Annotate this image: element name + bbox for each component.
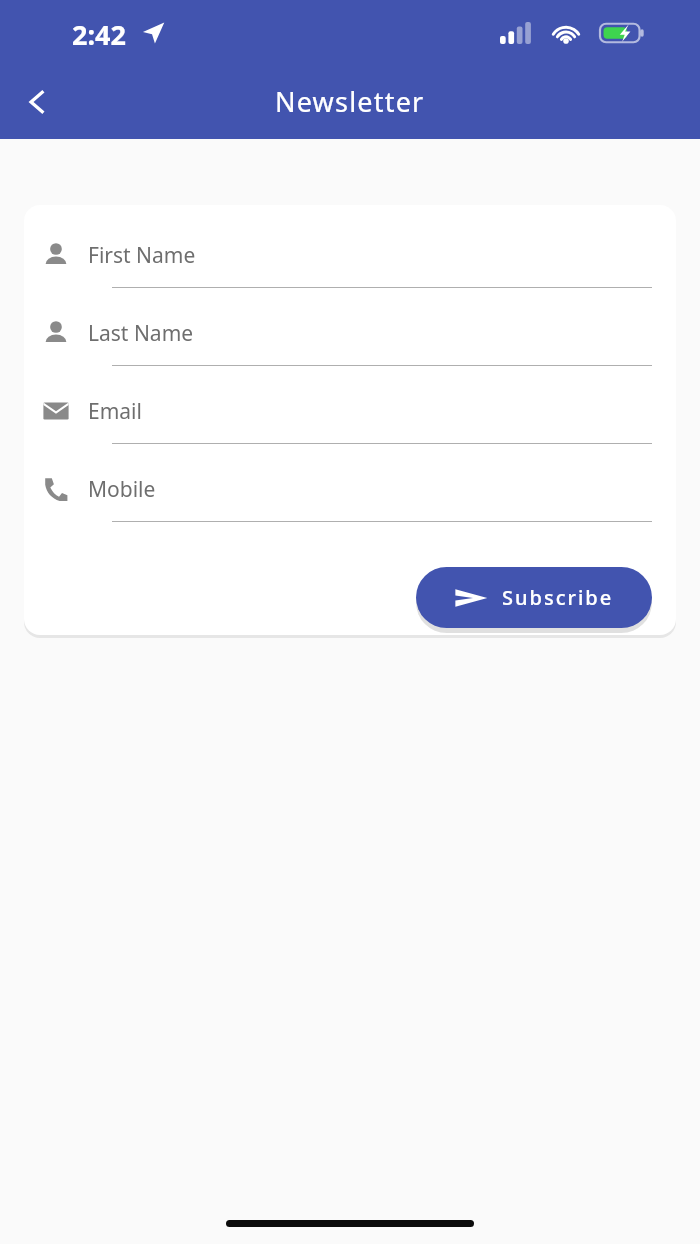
staticText: First Name — [88, 241, 196, 270]
staticText: Newsletter — [275, 83, 425, 120]
button[interactable]: Subscribe — [416, 567, 652, 628]
staticText: 2:42 — [72, 16, 126, 53]
button[interactable]: First Name — [88, 233, 652, 277]
button[interactable]: Last Name — [88, 311, 652, 355]
staticText: Mobile — [88, 475, 156, 504]
staticText: Subscribe — [502, 584, 614, 611]
staticText: Last Name — [88, 319, 194, 348]
button[interactable]: Mobile — [88, 467, 652, 511]
staticText: Email — [88, 397, 142, 426]
button[interactable]: Back — [10, 75, 64, 129]
button[interactable]: Email — [88, 389, 652, 433]
